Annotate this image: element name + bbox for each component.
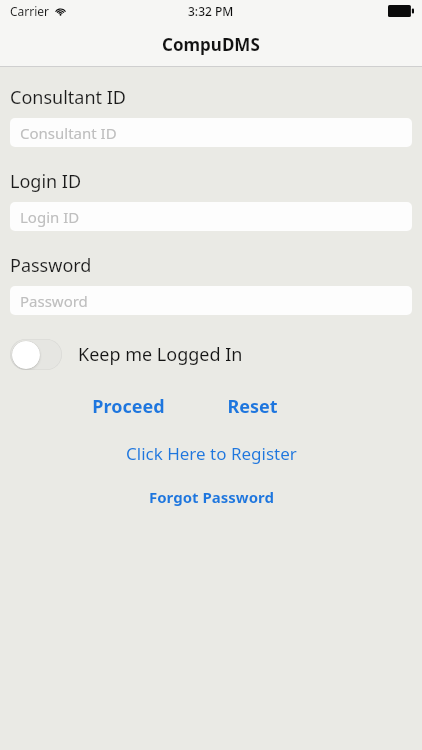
staticText: Consultant ID xyxy=(10,85,126,110)
button[interactable]: Proceed xyxy=(92,394,165,419)
button[interactable]: Login ID xyxy=(10,202,412,231)
staticText: Login ID xyxy=(10,169,82,194)
staticText: CompuDMS xyxy=(162,33,260,56)
staticText: 3:32 PM xyxy=(188,3,234,19)
staticText: Click Here to Register xyxy=(126,442,297,465)
button[interactable]: Forgot Password xyxy=(0,487,422,507)
button[interactable]: Click Here to Register xyxy=(0,442,422,465)
staticText: Proceed xyxy=(92,394,165,419)
staticText: Password xyxy=(20,291,88,311)
button[interactable]: Consultant ID xyxy=(10,118,412,147)
staticText: Login ID xyxy=(20,207,80,227)
button[interactable]: Password xyxy=(10,286,412,315)
button[interactable]: Reset xyxy=(227,394,278,419)
staticText: Carrier xyxy=(10,3,50,19)
staticText: Password xyxy=(10,253,92,278)
staticText: Keep me Logged In xyxy=(78,342,243,367)
button[interactable]: Keep me Logged In xyxy=(10,339,422,370)
staticText: Consultant ID xyxy=(20,123,117,143)
staticText: Forgot Password xyxy=(149,487,274,507)
staticText: Reset xyxy=(227,394,278,419)
